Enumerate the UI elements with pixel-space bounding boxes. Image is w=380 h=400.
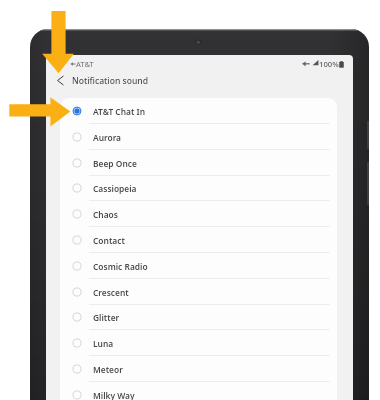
button[interactable]: Luna	[60, 330, 337, 356]
button[interactable]: Cosmic Radio	[60, 253, 337, 279]
button[interactable]: Beep Once	[60, 150, 337, 176]
staticText: Cassiopeia	[93, 183, 137, 194]
staticText: Glitter	[93, 312, 120, 323]
staticText: Luna	[93, 338, 114, 349]
staticText: AT&T	[76, 59, 94, 69]
button[interactable]: Glitter	[60, 304, 337, 330]
button[interactable]: Back	[51, 71, 70, 90]
staticText: AT&T Chat In	[93, 106, 146, 117]
staticText: Notification sound	[72, 75, 149, 87]
staticText: Contact	[93, 235, 125, 246]
staticText: Crescent	[93, 287, 129, 298]
staticText: Meteor	[93, 364, 123, 375]
staticText: Aurora	[93, 132, 122, 143]
button[interactable]: Cassiopeia	[60, 175, 337, 201]
staticText: 100%	[319, 59, 339, 69]
staticText: Beep Once	[93, 158, 137, 169]
staticText: Milky Way	[93, 390, 135, 400]
staticText: Cosmic Radio	[93, 261, 148, 272]
button[interactable]: Milky Way	[60, 382, 337, 400]
button[interactable]: AT&T Chat In	[60, 98, 337, 124]
button[interactable]: Aurora	[60, 124, 337, 150]
button[interactable]: Contact	[60, 227, 337, 253]
button[interactable]: Meteor	[60, 356, 337, 382]
button[interactable]: Crescent	[60, 279, 337, 305]
staticText: Chaos	[93, 209, 118, 220]
button[interactable]: Chaos	[60, 201, 337, 227]
